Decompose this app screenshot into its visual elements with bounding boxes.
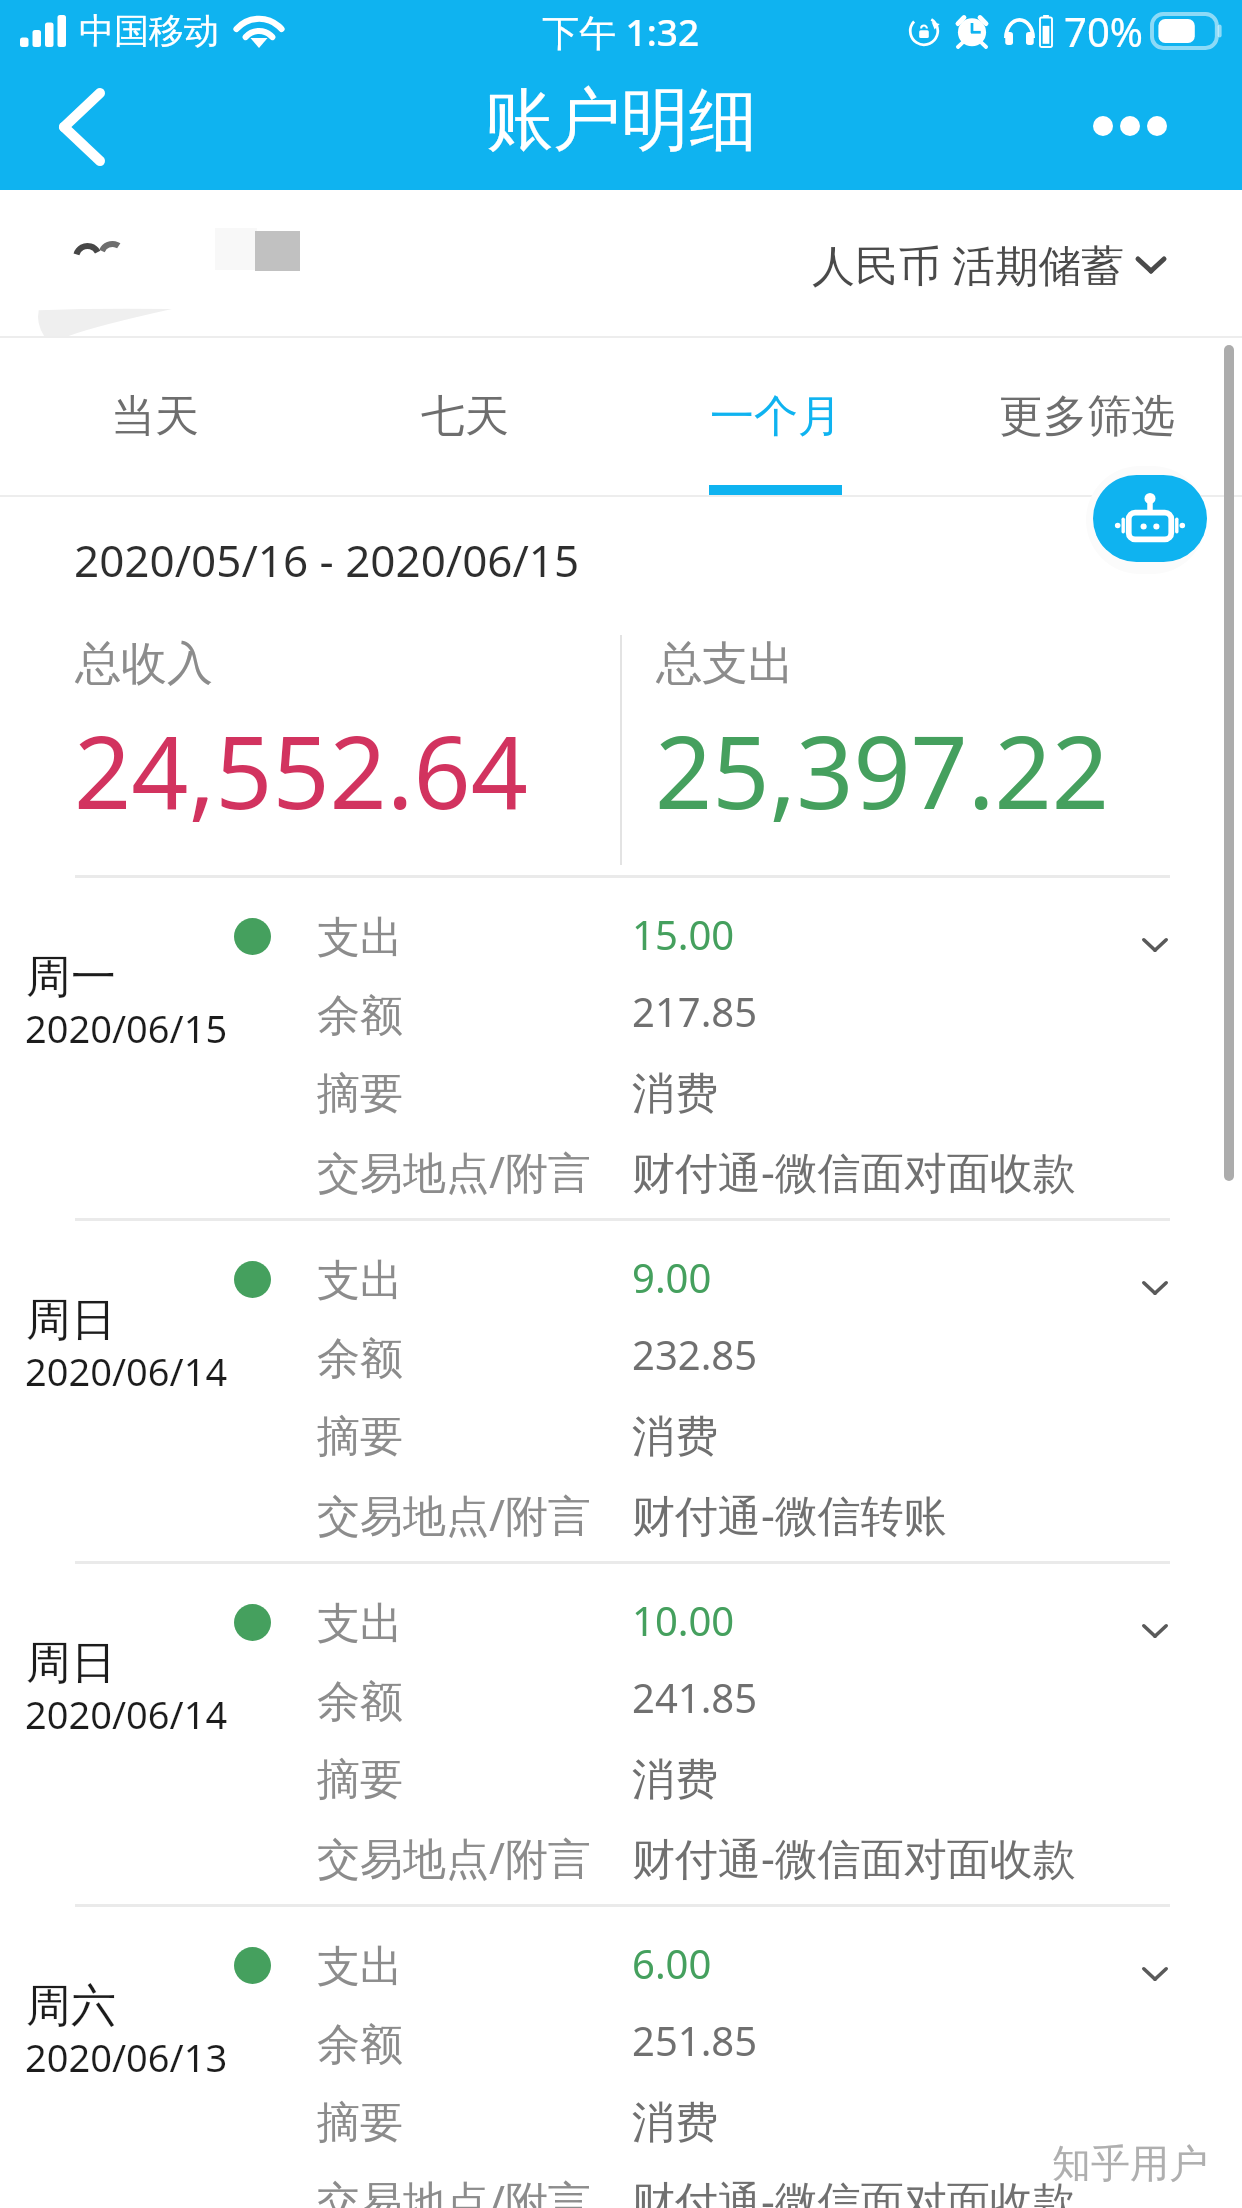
staticText: 消费: [632, 1753, 718, 1807]
staticText: 周一: [26, 949, 116, 1006]
staticText: 余额: [317, 1675, 403, 1729]
staticText: 241.85: [632, 1670, 758, 1724]
button[interactable]: 周六: [0, 1907, 1242, 2208]
staticText: 支出: [317, 1940, 403, 1994]
staticText: 当天: [111, 389, 199, 444]
staticText: 下午 1:32: [542, 6, 700, 57]
staticText: 七天: [421, 389, 509, 444]
button[interactable]: 周一: [0, 878, 1242, 1221]
button[interactable]: 当天: [0, 338, 310, 497]
staticText: 财付通-微信面对面收款: [632, 1828, 1076, 1887]
staticText: 2020/06/14: [25, 1345, 228, 1397]
staticText: 更多筛选: [999, 389, 1175, 444]
staticText: 财付通-微信面对面收款: [632, 1142, 1076, 1201]
staticText: 25,397.22: [655, 702, 1109, 838]
staticText: 支出: [317, 1597, 403, 1651]
staticText: 人民币 活期储蓄: [812, 235, 1125, 294]
staticText: 消费: [632, 1067, 718, 1121]
button[interactable]: 更多筛选: [931, 338, 1242, 497]
staticText: 支出: [317, 911, 403, 965]
button[interactable]: 周日: [0, 1564, 1242, 1907]
staticText: 217.85: [632, 984, 758, 1038]
staticText: 15.00: [632, 907, 735, 961]
staticText: 交易地点/附言: [317, 2171, 591, 2208]
staticText: 2020/05/16 - 2020/06/15: [74, 530, 580, 590]
staticText: 周六: [26, 1978, 116, 2035]
button[interactable]: Expand details: [1112, 1594, 1198, 1668]
staticText: 摘要: [317, 1067, 403, 1121]
staticText: 251.85: [632, 2013, 758, 2067]
staticText: 中国移动: [79, 9, 219, 53]
staticText: 9.00: [632, 1250, 712, 1304]
staticText: 余额: [317, 2018, 403, 2072]
staticText: 账户明细: [485, 78, 757, 164]
button[interactable]: Chat assistant: [1093, 475, 1207, 562]
staticText: 232.85: [632, 1327, 758, 1381]
staticText: 2020/06/13: [25, 2031, 228, 2083]
staticText: 余额: [317, 989, 403, 1043]
staticText: 摘要: [317, 1753, 403, 1807]
button[interactable]: More options: [1054, 62, 1206, 190]
staticText: 周日: [26, 1292, 116, 1349]
staticText: 6.00: [632, 1936, 712, 1990]
staticText: 余额: [317, 1332, 403, 1386]
staticText: 摘要: [317, 1410, 403, 1464]
staticText: 10.00: [632, 1593, 735, 1647]
staticText: 摘要: [317, 2096, 403, 2150]
staticText: 2020/06/14: [25, 1688, 228, 1740]
staticText: 一个月: [710, 389, 842, 444]
staticText: 知乎用户: [1052, 2139, 1208, 2188]
staticText: 财付通-微信面对面收款: [632, 2171, 1076, 2208]
staticText: 支出: [317, 1254, 403, 1308]
button[interactable]: Expand details: [1112, 908, 1198, 982]
button[interactable]: 人民币 活期储蓄: [812, 235, 1169, 294]
button[interactable]: Expand details: [1112, 1251, 1198, 1325]
staticText: 消费: [632, 2096, 718, 2150]
staticText: 24,552.64: [74, 702, 528, 838]
staticText: 70%: [1064, 4, 1143, 58]
staticText: 2020/06/15: [25, 1002, 228, 1054]
button[interactable]: Expand details: [1112, 1937, 1198, 2011]
staticText: 交易地点/附言: [317, 1485, 591, 1544]
button[interactable]: 周日: [0, 1221, 1242, 1564]
staticText: 总收入: [75, 635, 213, 693]
button[interactable]: 一个月: [620, 338, 931, 497]
staticText: 周日: [26, 1635, 116, 1692]
staticText: 财付通-微信转账: [632, 1485, 947, 1544]
button[interactable]: Back: [0, 62, 165, 190]
staticText: 总支出: [656, 635, 794, 693]
staticText: 消费: [632, 1410, 718, 1464]
staticText: 交易地点/附言: [317, 1142, 591, 1201]
staticText: 交易地点/附言: [317, 1828, 591, 1887]
button[interactable]: 七天: [310, 338, 620, 497]
